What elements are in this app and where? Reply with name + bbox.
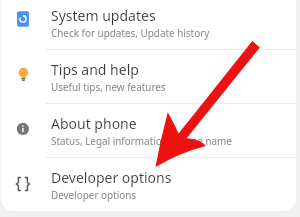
staticText: Tips and help [51, 60, 139, 79]
button[interactable]: Tips and help [1, 49, 296, 103]
staticText: Useful tips, new features [51, 80, 166, 93]
staticText: Developer options [51, 188, 137, 201]
button[interactable]: System updates [1, 0, 296, 49]
staticText: Developer options [51, 168, 172, 187]
staticText: Check for updates, Update history [51, 26, 210, 39]
button[interactable]: Developer options [1, 157, 296, 211]
staticText: System updates [51, 6, 156, 25]
staticText: Status, Legal information, Phone name [51, 134, 232, 147]
staticText: About phone [51, 114, 137, 133]
button[interactable]: About phone [1, 103, 296, 157]
